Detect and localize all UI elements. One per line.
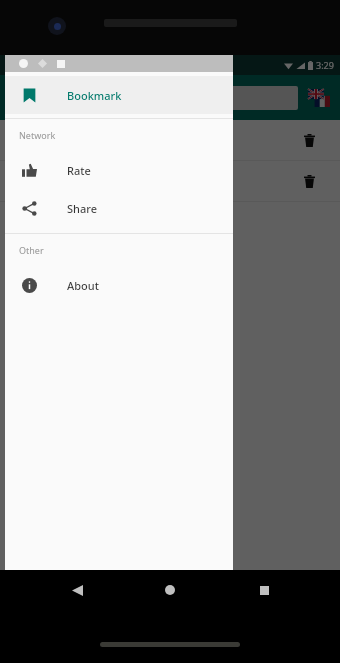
staticText: Other — [19, 244, 44, 256]
button[interactable]: About — [5, 266, 233, 304]
button[interactable]: Home — [153, 573, 187, 607]
staticText: word — [14, 91, 41, 106]
button[interactable]: Delete — [296, 168, 322, 194]
staticText: About — [67, 278, 99, 293]
button[interactable]: Bookmark — [5, 76, 233, 114]
button[interactable]: Delete — [296, 127, 322, 153]
button[interactable]: Change language — [306, 87, 332, 109]
staticText: Bookmark — [67, 88, 122, 103]
button[interactable]: word — [8, 86, 298, 110]
button[interactable]: Share — [5, 189, 233, 227]
staticText: Share — [67, 201, 97, 216]
staticText: Rate — [67, 163, 91, 178]
button[interactable]: Rate — [5, 151, 233, 189]
staticText: 3:29 — [316, 59, 334, 71]
button[interactable]: Back — [60, 573, 94, 607]
staticText: Network — [19, 129, 56, 141]
button[interactable]: Recents — [247, 573, 281, 607]
